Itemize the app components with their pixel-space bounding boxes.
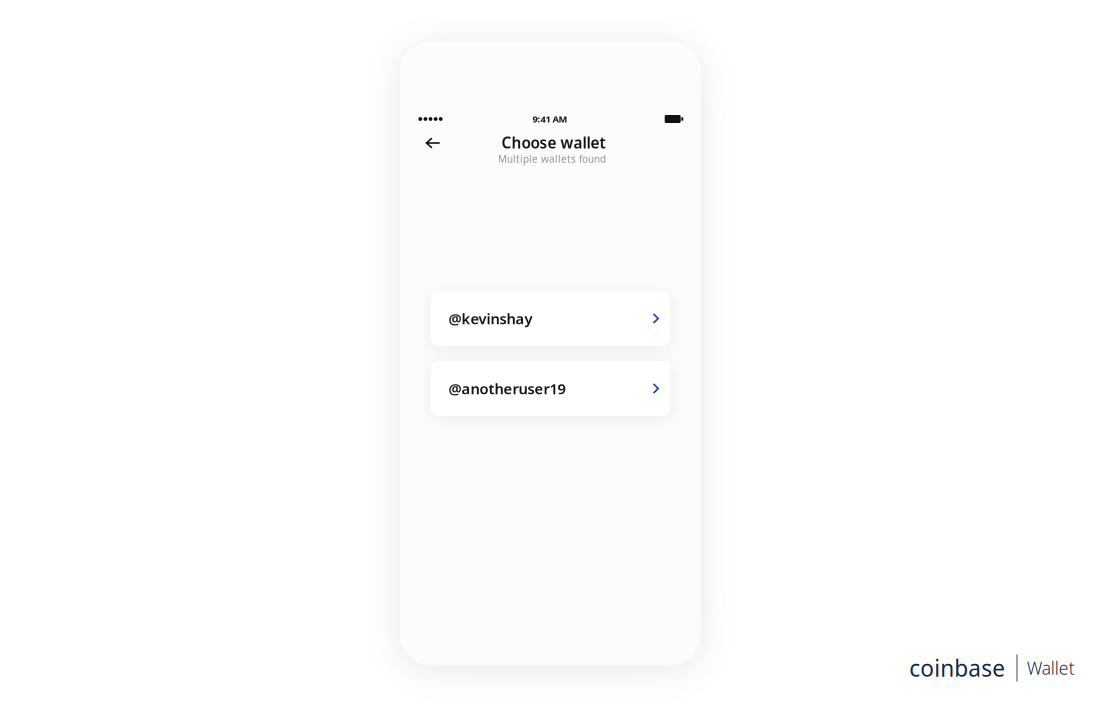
staticText: @kevinshay [448,309,532,328]
button[interactable]: @kevinshay [430,291,670,346]
staticText: Choose wallet [501,132,605,153]
staticText: coinbase [909,653,1005,683]
staticText: @anotheruser19 [448,379,565,398]
staticText: Multiple wallets found [498,152,606,166]
staticText: 9:41 AM [532,113,567,125]
button[interactable]: Back [418,129,448,157]
staticText: Wallet [1027,656,1075,680]
button[interactable]: @anotheruser19 [430,361,670,416]
